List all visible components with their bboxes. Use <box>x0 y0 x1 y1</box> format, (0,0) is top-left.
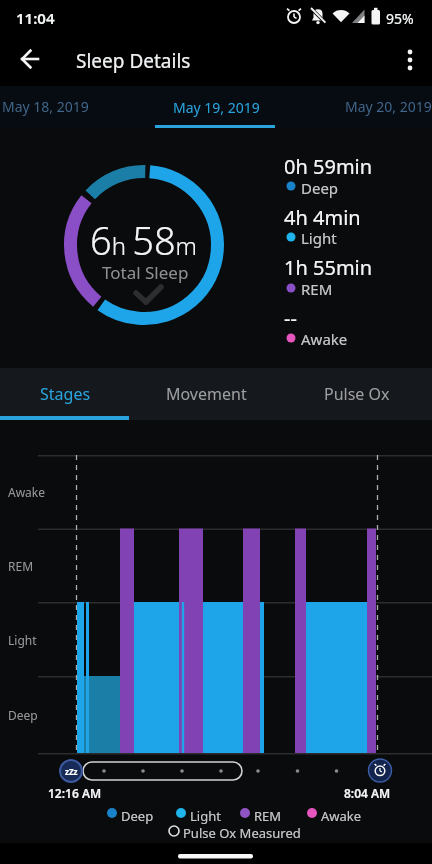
button[interactable] <box>386 36 432 86</box>
staticText: 1h 55min <box>284 254 373 281</box>
staticText: Pulse Ox Measured <box>183 824 301 842</box>
staticText: Deep <box>121 807 154 825</box>
staticText: 4h 4min <box>284 204 361 231</box>
staticText: Deep <box>8 707 38 723</box>
button[interactable] <box>368 759 392 783</box>
staticText: 8:04 AM <box>344 785 391 801</box>
staticText: May 18, 2019 <box>2 97 89 116</box>
staticText: Light <box>301 228 337 248</box>
staticText: May 20, 2019 <box>345 97 432 116</box>
staticText: May 19, 2019 <box>173 98 260 117</box>
button[interactable]: May 19, 2019 <box>144 86 288 128</box>
button[interactable]: May 20, 2019 <box>288 86 432 128</box>
staticText: 12:16 AM <box>48 785 102 801</box>
staticText: Awake <box>321 807 362 825</box>
button[interactable]: Stages <box>0 368 130 420</box>
staticText: 95% <box>386 9 414 28</box>
staticText: Awake <box>301 329 348 349</box>
button[interactable]: zZz <box>59 759 83 783</box>
staticText: REM <box>254 807 282 825</box>
staticText: Stages <box>40 383 91 405</box>
staticText: Sleep Details <box>76 48 191 74</box>
staticText: Pulse Ox <box>324 383 390 405</box>
staticText: Movement <box>166 383 247 405</box>
button[interactable] <box>6 36 54 86</box>
staticText: REM <box>301 279 333 299</box>
staticText: Total Sleep <box>102 261 189 284</box>
button[interactable]: Pulse Ox <box>282 368 432 420</box>
staticText: Light <box>190 807 221 825</box>
staticText: Light <box>8 632 37 648</box>
staticText: 0h 59min <box>284 153 373 180</box>
staticText: Awake <box>8 484 46 500</box>
staticText: REM <box>8 558 34 574</box>
staticText: 11:04 <box>16 8 55 28</box>
button[interactable]: May 18, 2019 <box>0 86 144 128</box>
staticText: zZz <box>65 766 78 777</box>
staticText: Deep <box>301 178 339 198</box>
staticText: 6h 58m <box>90 214 198 266</box>
button[interactable]: Movement <box>130 368 282 420</box>
staticText: -- <box>284 305 297 332</box>
